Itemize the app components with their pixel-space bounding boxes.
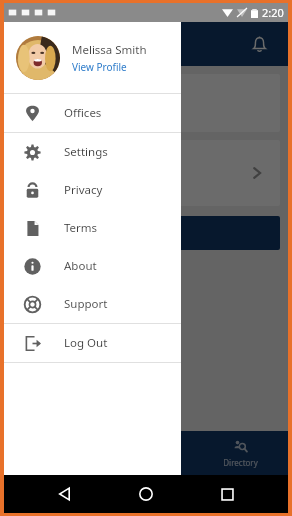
staticText: Melissa Smith: [72, 42, 147, 58]
button[interactable]: Home: [126, 475, 166, 513]
staticText: Settings: [64, 144, 108, 160]
staticText: Melissa Smith: [26, 94, 111, 112]
button[interactable]: Terms: [4, 209, 181, 247]
button[interactable]: Melissa Smith: [4, 22, 181, 93]
button[interactable]: Back: [45, 475, 85, 513]
button[interactable]: Offices: [4, 94, 181, 132]
button[interactable]: Notifications: [244, 29, 274, 59]
staticText: Directory: [223, 457, 258, 468]
button[interactable]: Support: [4, 285, 181, 323]
staticText: Offices: [64, 105, 102, 121]
staticText: Terms: [64, 220, 98, 236]
button[interactable]: About: [4, 247, 181, 285]
staticText: About: [64, 258, 97, 274]
button[interactable]: Settings: [4, 133, 181, 171]
staticText: Support: [64, 296, 108, 312]
staticText: View Profile: [72, 60, 127, 74]
button[interactable]: Recents: [207, 475, 247, 513]
staticText: 2:20: [262, 5, 284, 20]
button[interactable]: STAFF: [12, 216, 280, 250]
staticText: Privacy: [64, 182, 103, 198]
button[interactable]: Log Out: [4, 324, 181, 362]
button[interactable]: Privacy: [4, 171, 181, 209]
button[interactable]: Directory: [193, 431, 288, 475]
button[interactable]: Melissa Smith: [12, 74, 280, 132]
button[interactable]: [12, 140, 280, 206]
button[interactable]: Search: [98, 431, 193, 475]
staticText: Log Out: [64, 335, 108, 351]
